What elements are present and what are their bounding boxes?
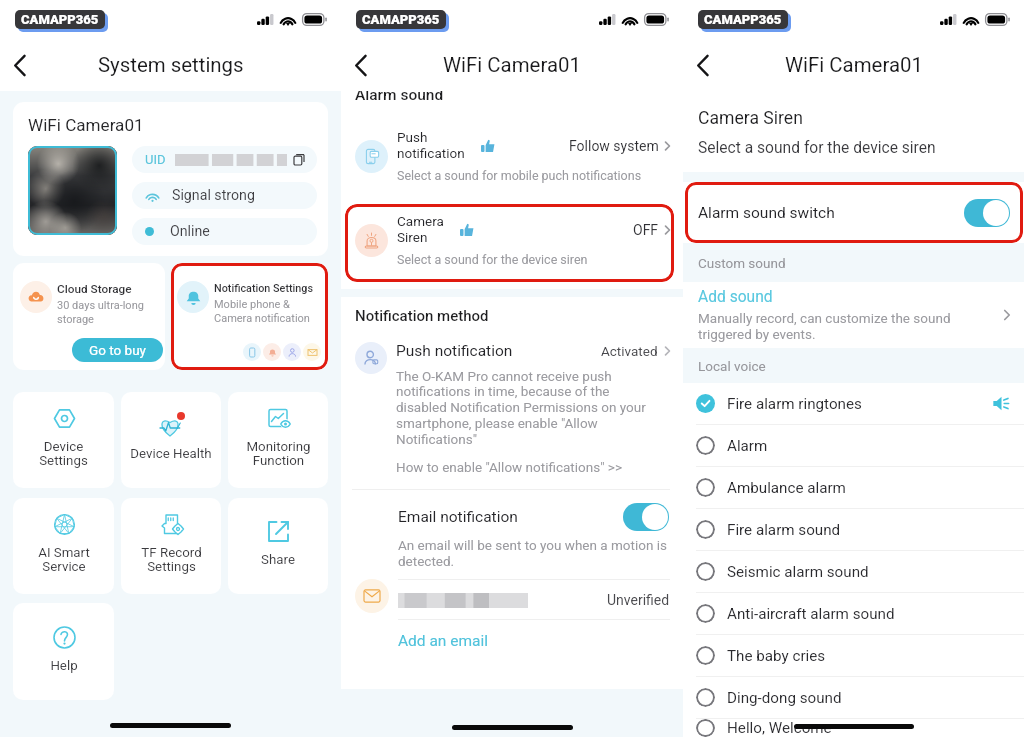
staticText: Manually record, can customize the sound…: [698, 310, 951, 342]
staticText: Camera Siren: [397, 213, 444, 246]
button[interactable]: Seismic alarm sound: [683, 551, 1024, 592]
staticText: Cloud Storage: [57, 282, 132, 296]
staticText: Ding-dong sound: [727, 689, 1010, 707]
staticText: CAMAPP365: [362, 12, 440, 27]
staticText: WiFi Camera01: [785, 53, 923, 77]
button[interactable]: Add an email: [398, 632, 489, 650]
staticText: Alarm: [727, 437, 1010, 455]
staticText: Ambulance alarm: [727, 479, 1010, 497]
button[interactable]: Help: [13, 603, 114, 700]
button[interactable]: Ding-dong sound: [683, 677, 1024, 718]
staticText: OFF: [633, 222, 659, 238]
staticText: Seismic alarm sound: [727, 563, 1010, 581]
staticText: Custom sound: [698, 255, 786, 271]
button[interactable]: Add sound: [683, 282, 1024, 348]
staticText: UID: [145, 152, 166, 167]
staticText: Hello, Welcome: [727, 719, 1010, 737]
staticText: Online: [170, 223, 210, 240]
button[interactable]: Hello, Welcome: [683, 719, 1024, 737]
button[interactable]: Fire alarm sound: [683, 509, 1024, 550]
button[interactable]: Cloud Storage: [13, 263, 165, 370]
staticText: Push notification: [397, 129, 465, 162]
button[interactable]: Camera Siren: [341, 204, 683, 276]
staticText: Notification Settings: [214, 282, 314, 295]
staticText: CAMAPP365: [21, 12, 99, 27]
button[interactable]: Device Health: [121, 392, 221, 488]
staticText: System settings: [98, 53, 244, 77]
staticText: Help: [50, 658, 78, 674]
staticText: 30 days ultra-long storage: [57, 299, 144, 325]
button[interactable]: Ambulance alarm: [683, 467, 1024, 508]
staticText: Add sound: [698, 288, 773, 306]
staticText: Mobile phone & Camera notification: [214, 298, 310, 324]
staticText: Anti-aircraft alarm sound: [727, 605, 1010, 623]
staticText: Alarm sound: [355, 91, 444, 104]
staticText: Follow system: [569, 138, 659, 154]
staticText: Camera Siren: [698, 108, 803, 129]
button[interactable]: WiFi Camera01: [13, 102, 328, 256]
staticText: Device Settings: [39, 439, 88, 469]
button[interactable]: Go to buy: [72, 338, 163, 362]
staticText: Email notification: [398, 508, 623, 526]
staticText: Fire alarm sound: [727, 521, 1010, 539]
staticText: Device Health: [130, 446, 212, 462]
button[interactable]: Fire alarm ringtones: [683, 383, 1024, 424]
button[interactable]: Alarm sound switch: [683, 182, 1024, 243]
button[interactable]: TF Record Settings: [121, 498, 221, 594]
button[interactable]: Monitoring Function: [228, 392, 328, 488]
staticText: Select a sound for the device siren: [397, 252, 588, 267]
button[interactable]: Push notification: [341, 342, 683, 475]
staticText: The O-KAM Pro cannot receive push notifi…: [396, 368, 646, 448]
button[interactable]: Back: [342, 46, 380, 84]
staticText: Unverified: [607, 592, 670, 608]
button[interactable]: How to enable "Allow notifications" >>: [396, 459, 622, 475]
button[interactable]: Push notification: [341, 120, 683, 192]
staticText: Select a sound for mobile puch notificat…: [397, 168, 642, 183]
staticText: Monitoring Function: [246, 439, 311, 469]
button[interactable]: Share: [228, 498, 328, 594]
button[interactable]: The baby cries: [683, 635, 1024, 676]
staticText: WiFi Camera01: [28, 115, 144, 135]
staticText: Push notification: [396, 342, 601, 360]
button[interactable]: Device Settings: [13, 392, 114, 488]
staticText: CAMAPP365: [24, 15, 102, 30]
button[interactable]: Toggle: [964, 199, 1010, 227]
staticText: Share: [261, 552, 295, 568]
staticText: Local voice: [698, 358, 766, 374]
button[interactable]: Back: [684, 46, 722, 84]
staticText: The baby cries: [727, 647, 1010, 665]
staticText: AI Smart Service: [38, 545, 90, 575]
staticText: Alarm sound switch: [698, 204, 964, 222]
button[interactable]: Alarm: [683, 425, 1024, 466]
staticText: Fire alarm ringtones: [727, 395, 993, 413]
staticText: Notification method: [355, 307, 489, 325]
staticText: Go to buy: [89, 342, 146, 358]
staticText: CAMAPP365: [365, 15, 443, 30]
button[interactable]: Toggle: [623, 503, 669, 531]
button[interactable]: AI Smart Service: [13, 498, 114, 594]
staticText: CAMAPP365: [707, 15, 785, 30]
button[interactable]: Anti-aircraft alarm sound: [683, 593, 1024, 634]
staticText: CAMAPP365: [704, 12, 782, 27]
staticText: TF Record Settings: [141, 545, 202, 575]
button[interactable]: [171, 263, 328, 370]
staticText: An email will be sent to you when a moti…: [398, 537, 667, 570]
staticText: Select a sound for the device siren: [698, 139, 936, 157]
button[interactable]: Back: [1, 46, 39, 84]
staticText: Signal strong: [172, 187, 255, 204]
staticText: Activated: [601, 343, 658, 359]
staticText: WiFi Camera01: [443, 53, 581, 77]
